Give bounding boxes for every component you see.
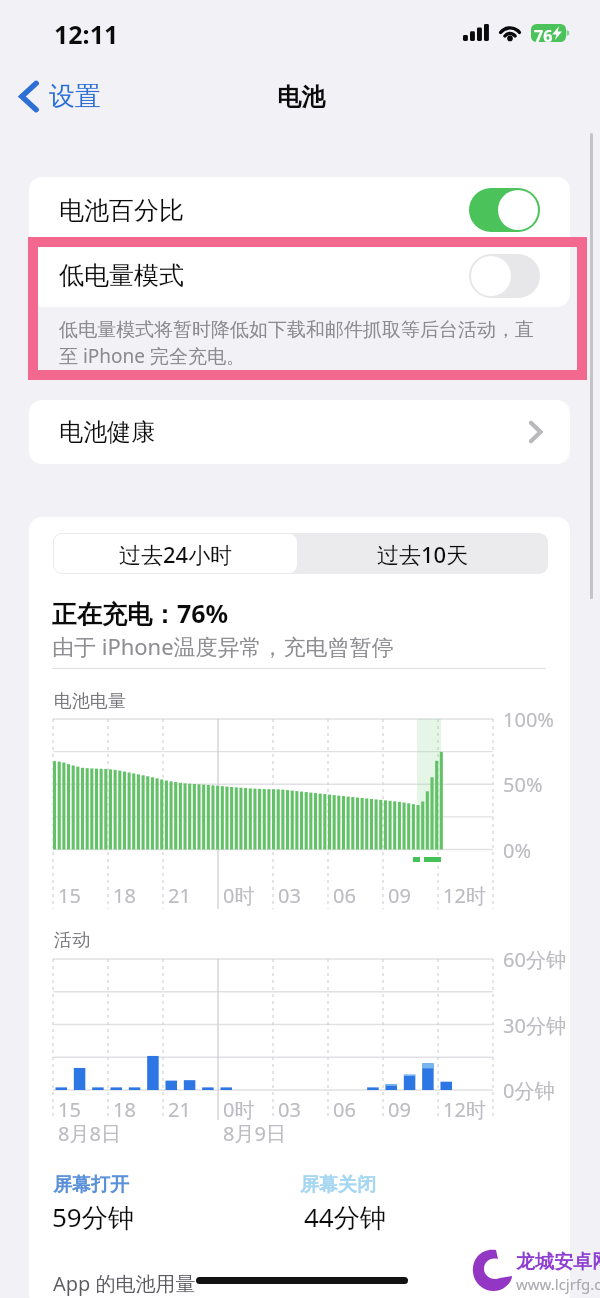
staticText: www.lcjrfg.com <box>516 1274 600 1294</box>
button[interactable]: On <box>469 188 540 232</box>
staticText: 76 <box>534 25 553 43</box>
staticText: 电池百分比 <box>59 195 184 226</box>
staticText: 0时 <box>223 1096 255 1123</box>
staticText: 电池健康 <box>59 417 155 447</box>
staticText: 03 <box>278 882 301 909</box>
staticText: 15 <box>58 882 81 909</box>
staticText: 由于 iPhone温度异常，充电曾暂停 <box>52 631 394 661</box>
staticText: 电池 <box>277 82 325 112</box>
button[interactable]: 过去24小时 <box>54 534 297 573</box>
staticText: 过去24小时 <box>119 539 233 569</box>
button[interactable]: 低电量模式 <box>59 244 540 307</box>
button[interactable]: Off <box>469 254 540 298</box>
staticText: 50% <box>503 771 543 798</box>
staticText: 18 <box>113 882 136 909</box>
staticText: 低电量模式 <box>59 260 184 291</box>
staticText: 低电量模式将暂时降低如下载和邮件抓取等后台活动，直至 iPhone 完全充电。 <box>59 318 545 369</box>
staticText: 06 <box>333 882 356 909</box>
staticText: 过去10天 <box>377 539 469 569</box>
button[interactable]: 电池健康 <box>29 400 570 464</box>
staticText: 12时 <box>443 882 486 909</box>
staticText: 设置 <box>49 80 101 113</box>
staticText: 09 <box>388 882 411 909</box>
staticText: 12时 <box>443 1096 486 1123</box>
button[interactable]: 设置 <box>17 74 101 118</box>
staticText: 0分钟 <box>503 1077 555 1104</box>
staticText: App 的电池用量 <box>53 1270 196 1297</box>
staticText: 0时 <box>223 882 255 909</box>
staticText: 44分钟 <box>304 1199 386 1235</box>
staticText: 21 <box>168 1096 191 1123</box>
staticText: 屏幕打开 <box>53 1173 129 1197</box>
button[interactable]: 过去10天 <box>298 534 547 573</box>
staticText: 屏幕关闭 <box>300 1173 376 1197</box>
staticText: 活动 <box>54 929 90 952</box>
staticText: 100% <box>503 706 554 733</box>
staticText: 8月9日 <box>223 1120 286 1147</box>
staticText: 18 <box>113 1096 136 1123</box>
button[interactable]: 电池百分比 <box>59 177 540 243</box>
staticText: 30分钟 <box>503 1012 566 1039</box>
staticText: 8月8日 <box>58 1120 121 1147</box>
staticText: 龙城安卓网 <box>516 1250 600 1274</box>
staticText: 0% <box>503 837 532 864</box>
staticText: 59分钟 <box>52 1199 134 1235</box>
staticText: 06 <box>333 1096 356 1123</box>
staticText: 03 <box>278 1096 301 1123</box>
staticText: 15 <box>58 1096 81 1123</box>
staticText: 60分钟 <box>503 946 566 973</box>
staticText: 正在充电：76% <box>52 596 229 630</box>
staticText: 09 <box>388 1096 411 1123</box>
staticText: 21 <box>168 882 191 909</box>
staticText: 电池电量 <box>54 690 126 713</box>
staticText: 12:11 <box>54 17 119 51</box>
